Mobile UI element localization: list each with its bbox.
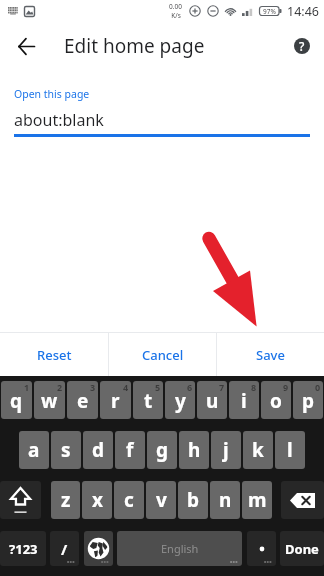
- staticText: g: [156, 437, 169, 463]
- staticText: n: [219, 487, 232, 513]
- button[interactable]: a: [19, 431, 49, 469]
- staticText: k: [252, 437, 264, 463]
- staticText: d: [92, 437, 105, 463]
- button[interactable]: 8: [229, 381, 259, 419]
- staticText: t: [144, 388, 153, 414]
- button[interactable]: Period: [247, 531, 276, 566]
- staticText: 1: [24, 381, 30, 393]
- staticText: Done: [285, 540, 319, 558]
- button[interactable]: Done: [280, 531, 324, 566]
- button[interactable]: s: [51, 431, 81, 469]
- staticText: z: [61, 487, 71, 513]
- button[interactable]: f: [115, 431, 145, 469]
- staticText: s: [61, 437, 71, 463]
- staticText: v: [156, 487, 167, 513]
- button[interactable]: Back: [0, 22, 52, 70]
- staticText: Save: [256, 346, 285, 364]
- staticText: Open this page: [14, 87, 90, 101]
- staticText: 8: [251, 381, 257, 393]
- staticText: o: [270, 388, 282, 414]
- staticText: about:blank: [14, 109, 104, 131]
- staticText: K/s: [171, 11, 181, 20]
- button[interactable]: j: [211, 431, 241, 469]
- staticText: b: [187, 487, 200, 513]
- staticText: 6: [187, 381, 193, 393]
- button[interactable]: c: [114, 481, 144, 519]
- button[interactable]: 1: [1, 381, 32, 419]
- button[interactable]: Change language: [84, 531, 113, 566]
- staticText: a: [28, 437, 40, 463]
- button[interactable]: k: [243, 431, 273, 469]
- button[interactable]: b: [178, 481, 208, 519]
- staticText: ?: [299, 38, 305, 54]
- button[interactable]: ?123: [0, 531, 46, 566]
- staticText: 0: [315, 381, 321, 393]
- button[interactable]: 3: [67, 381, 98, 419]
- staticText: m: [248, 487, 267, 513]
- staticText: x: [92, 487, 103, 513]
- button[interactable]: Reset: [0, 333, 108, 376]
- button[interactable]: 7: [197, 381, 227, 419]
- staticText: r: [111, 388, 120, 414]
- staticText: w: [41, 388, 58, 414]
- staticText: 14:46: [287, 3, 319, 20]
- button[interactable]: Help: [280, 24, 324, 68]
- staticText: Edit home page: [64, 33, 205, 59]
- staticText: j: [223, 437, 229, 463]
- staticText: e: [77, 388, 89, 414]
- button[interactable]: Cancel: [109, 333, 216, 376]
- button[interactable]: /: [50, 531, 79, 566]
- staticText: 5: [155, 381, 161, 393]
- button[interactable]: 5: [133, 381, 163, 419]
- button[interactable]: 0: [293, 381, 323, 419]
- staticText: i: [241, 388, 247, 414]
- staticText: q: [10, 388, 23, 414]
- staticText: p: [302, 388, 315, 414]
- staticText: /: [61, 539, 68, 559]
- button[interactable]: n: [210, 481, 240, 519]
- button[interactable]: 9: [261, 381, 291, 419]
- button[interactable]: h: [179, 431, 209, 469]
- button[interactable]: 2: [34, 381, 65, 419]
- button[interactable]: English: [117, 531, 242, 566]
- button[interactable]: Save: [217, 333, 324, 376]
- button[interactable]: g: [147, 431, 177, 469]
- staticText: c: [124, 487, 134, 513]
- staticText: l: [287, 437, 293, 463]
- button[interactable]: v: [146, 481, 176, 519]
- staticText: h: [188, 437, 201, 463]
- staticText: Reset: [37, 346, 72, 364]
- staticText: 9: [283, 381, 289, 393]
- button[interactable]: 4: [100, 381, 131, 419]
- staticText: u: [206, 388, 219, 414]
- button[interactable]: l: [275, 431, 305, 469]
- button[interactable]: 6: [165, 381, 195, 419]
- staticText: English: [161, 541, 199, 556]
- staticText: 0.00: [169, 2, 182, 11]
- button[interactable]: Shift: [0, 481, 41, 519]
- staticText: 97%: [263, 7, 276, 16]
- staticText: 4: [123, 381, 129, 393]
- button[interactable]: Backspace: [281, 481, 324, 519]
- staticText: f: [126, 437, 134, 463]
- button[interactable]: d: [83, 431, 113, 469]
- staticText: Cancel: [142, 346, 184, 364]
- staticText: y: [175, 388, 186, 414]
- staticText: ?123: [9, 540, 38, 558]
- staticText: 3: [90, 381, 96, 393]
- staticText: 7: [219, 381, 225, 393]
- button[interactable]: x: [82, 481, 112, 519]
- button[interactable]: m: [242, 481, 272, 519]
- button[interactable]: z: [51, 481, 80, 519]
- staticText: 2: [57, 381, 63, 393]
